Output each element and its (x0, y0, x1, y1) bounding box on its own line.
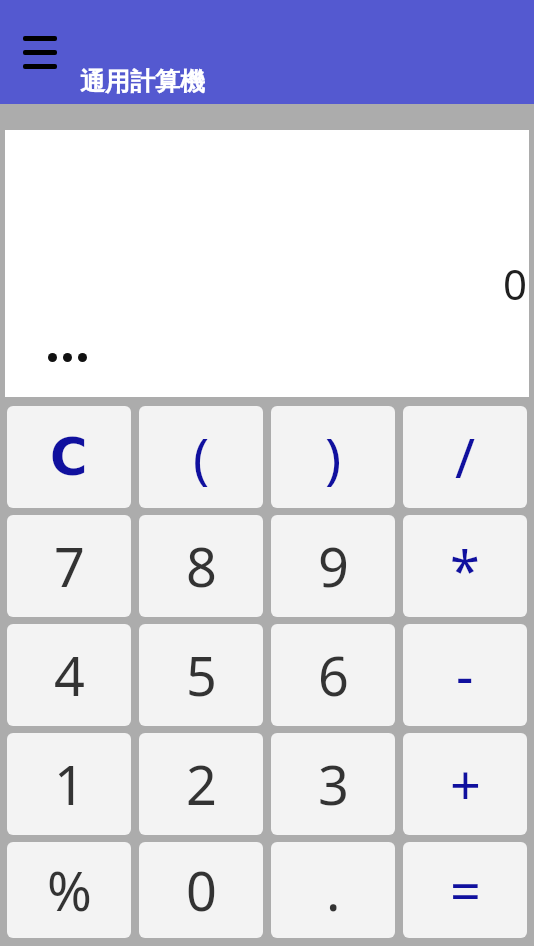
staticText: + (450, 747, 481, 821)
staticText: % (47, 853, 92, 927)
staticText: 0 (503, 255, 528, 312)
button[interactable]: 7 (7, 515, 131, 617)
button[interactable]: 2 (139, 733, 263, 835)
staticText: 通用計算機 (80, 66, 205, 97)
button[interactable]: 6 (271, 624, 395, 726)
staticText: ) (325, 420, 342, 494)
staticText: * (450, 533, 480, 607)
staticText: / (455, 420, 476, 494)
button[interactable]: 1 (7, 733, 131, 835)
button[interactable]: - (403, 624, 527, 726)
button[interactable]: ( (139, 406, 263, 508)
staticText: ( (193, 420, 210, 494)
staticText: . (326, 853, 341, 927)
button[interactable]: 9 (271, 515, 395, 617)
button[interactable]: + (403, 733, 527, 835)
staticText: = (450, 853, 481, 927)
staticText: C (50, 428, 88, 487)
staticText: - (456, 638, 474, 712)
staticText: 9 (318, 529, 349, 603)
button[interactable]: * (403, 515, 527, 617)
button[interactable]: % (7, 842, 131, 938)
button[interactable] (45, 345, 95, 370)
staticText: 2 (186, 747, 217, 821)
staticText: 3 (318, 747, 349, 821)
staticText: 1 (54, 747, 85, 821)
button[interactable]: 8 (139, 515, 263, 617)
staticText: 5 (186, 638, 217, 712)
staticText: 0 (186, 853, 217, 927)
staticText: 6 (318, 638, 349, 712)
button[interactable]: = (403, 842, 527, 938)
button[interactable]: C (7, 406, 131, 508)
staticText: 7 (54, 529, 85, 603)
staticText: 8 (186, 529, 217, 603)
button[interactable]: ) (271, 406, 395, 508)
button[interactable]: 4 (7, 624, 131, 726)
button[interactable]: 5 (139, 624, 263, 726)
button[interactable]: 0 (139, 842, 263, 938)
button[interactable]: 3 (271, 733, 395, 835)
button[interactable]: / (403, 406, 527, 508)
button[interactable]: . (271, 842, 395, 938)
staticText: 4 (54, 638, 85, 712)
button[interactable] (14, 26, 66, 78)
